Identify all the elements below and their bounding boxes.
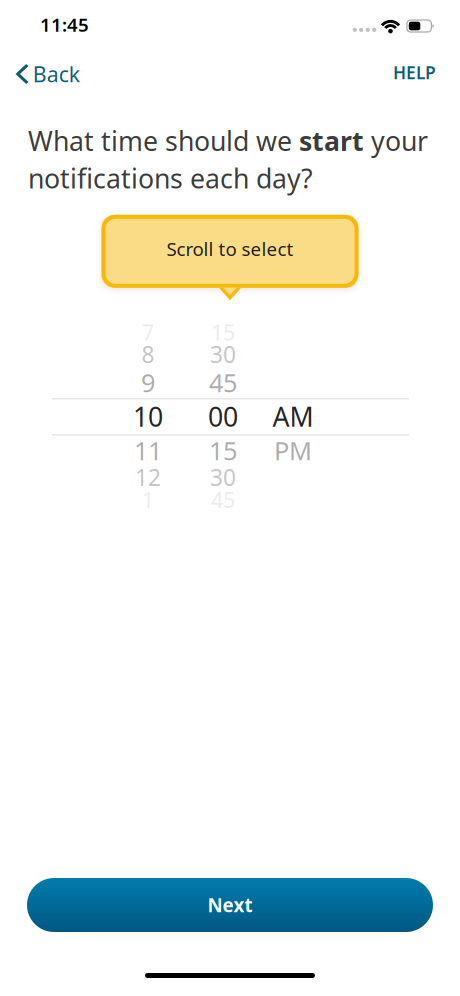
staticText: What time should we start your notificat… (28, 123, 428, 196)
staticText: Next (207, 893, 252, 917)
staticText: 45 (209, 365, 237, 399)
staticText: 15 (209, 433, 237, 467)
staticText: 7 (142, 318, 154, 346)
staticText: AM (272, 399, 313, 434)
staticText: 30 (210, 339, 236, 369)
staticText: 15 (211, 318, 235, 346)
staticText: 30 (210, 462, 236, 492)
staticText: Scroll to select (166, 236, 293, 261)
staticText: 12 (135, 462, 161, 492)
staticText: 00 (208, 399, 238, 434)
staticText: 10 (133, 399, 163, 434)
staticText: PM (274, 433, 312, 467)
staticText: 9 (141, 365, 155, 399)
staticText: 11:45 (40, 12, 89, 37)
button[interactable]: Next (27, 878, 433, 932)
staticText: 1 (142, 486, 154, 514)
button[interactable]: HELP (379, 52, 460, 96)
staticText: 8 (141, 339, 154, 369)
staticText: HELP (393, 61, 436, 84)
staticText: 11 (134, 433, 162, 467)
button[interactable]: Back (0, 52, 92, 96)
staticText: 45 (211, 486, 235, 514)
staticText: Back (33, 60, 80, 88)
